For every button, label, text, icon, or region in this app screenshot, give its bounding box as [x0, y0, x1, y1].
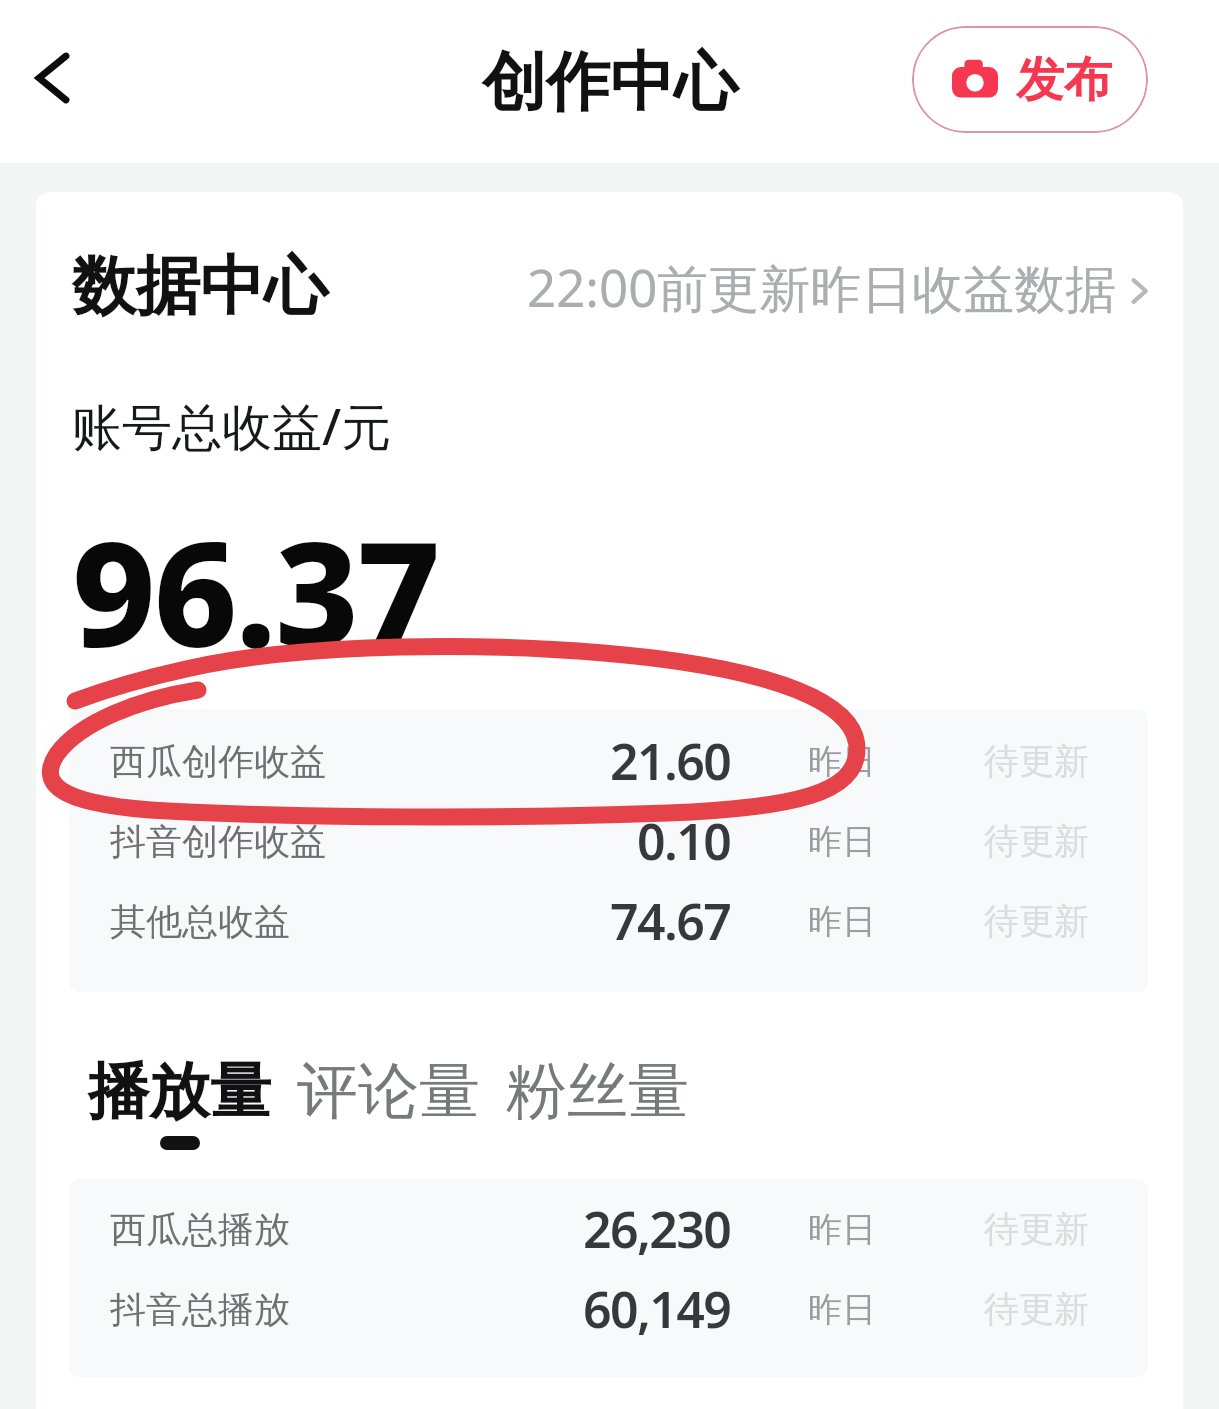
staticText: 22:00前更新昨日收益数据 — [527, 252, 1117, 322]
button[interactable]: 粉丝量 — [506, 1053, 689, 1150]
button[interactable]: Back — [14, 40, 90, 116]
staticText: 其他总收益 — [110, 899, 290, 944]
staticText: 待更新 — [984, 1207, 1089, 1251]
staticText: 昨日 — [808, 1288, 876, 1331]
staticText: 待更新 — [984, 819, 1089, 863]
staticText: 待更新 — [984, 899, 1089, 943]
button[interactable]: 评论量 — [297, 1053, 480, 1150]
staticText: 60,149 — [583, 1275, 731, 1343]
button[interactable]: 22:00前更新昨日收益数据 — [522, 240, 1156, 320]
staticText: 创作中心 — [482, 42, 738, 123]
staticText: 96.37 — [72, 492, 439, 689]
staticText: 26,230 — [583, 1195, 731, 1263]
staticText: 发布 — [1016, 50, 1112, 110]
staticText: 昨日 — [808, 1208, 876, 1251]
button[interactable]: 抖音创作收益 — [69, 801, 1148, 881]
button[interactable]: 发布 — [912, 26, 1148, 133]
staticText: 昨日 — [808, 820, 876, 863]
staticText: 待更新 — [984, 739, 1089, 783]
staticText: 抖音总播放 — [110, 1287, 290, 1332]
staticText: 西瓜创作收益 — [110, 739, 326, 784]
button[interactable]: 西瓜创作收益 — [69, 721, 1148, 801]
button[interactable]: 播放量 — [88, 1053, 271, 1150]
button[interactable]: 抖音总播放 — [69, 1269, 1148, 1349]
staticText: 评论量 — [297, 1053, 480, 1130]
staticText: 待更新 — [984, 1287, 1089, 1331]
staticText: 74.67 — [610, 887, 731, 955]
staticText: 抖音创作收益 — [110, 819, 326, 864]
button[interactable]: 西瓜总播放 — [69, 1189, 1148, 1269]
staticText: 粉丝量 — [506, 1053, 689, 1130]
staticText: 播放量 — [88, 1053, 271, 1130]
staticText: 账号总收益/元 — [72, 392, 392, 460]
staticText: 昨日 — [808, 740, 876, 783]
staticText: 0.10 — [637, 807, 731, 875]
button[interactable]: 其他总收益 — [69, 881, 1148, 961]
staticText: 昨日 — [808, 900, 876, 943]
staticText: 西瓜总播放 — [110, 1207, 290, 1252]
staticText: 数据中心 — [72, 246, 328, 327]
staticText: 21.60 — [610, 727, 731, 795]
other: Open earnings detail — [1117, 269, 1161, 313]
